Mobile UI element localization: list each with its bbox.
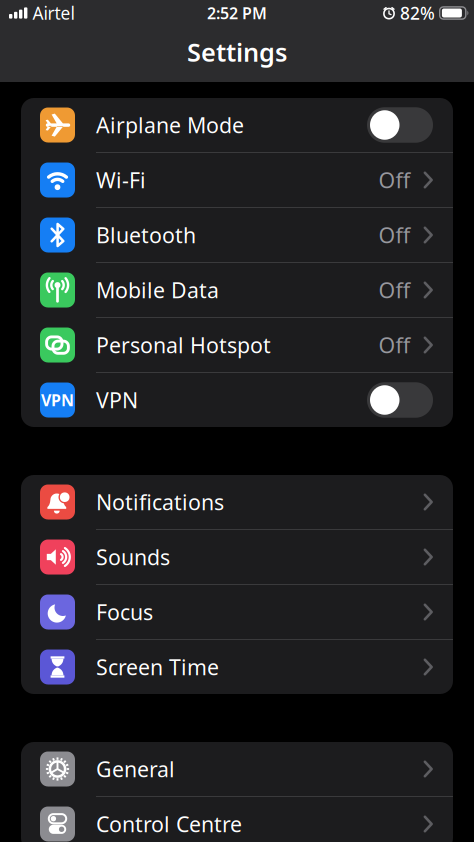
staticText: Off [378,221,410,249]
staticText: VPN [96,386,138,414]
button[interactable]: Control Centre [21,797,453,842]
button[interactable]: Wi-Fi [21,153,453,207]
staticText: Airtel [32,1,74,24]
staticText: Airplane Mode [96,111,244,139]
button[interactable]: VPN [367,382,433,418]
button[interactable]: Mobile Data [21,263,453,317]
staticText: Control Centre [96,810,242,838]
staticText: Bluetooth [96,221,196,249]
staticText: Off [378,276,410,304]
staticText: Off [378,331,410,359]
button[interactable]: Notifications [21,475,453,529]
staticText: Notifications [96,488,224,516]
button[interactable]: General [21,742,453,796]
staticText: VPN [41,389,74,411]
staticText: Screen Time [96,653,219,681]
staticText: Focus [96,598,153,626]
button[interactable]: Personal Hotspot [21,318,453,372]
staticText: Wi-Fi [96,166,146,194]
button[interactable]: Sounds [21,530,453,584]
staticText: Off [378,166,410,194]
staticText: Settings [187,35,287,69]
staticText: 82% [400,1,435,24]
button[interactable]: Airplane Mode [367,107,433,143]
button[interactable]: Bluetooth [21,208,453,262]
button[interactable]: Focus [21,585,453,639]
staticText: Mobile Data [96,276,219,304]
button[interactable]: Screen Time [21,640,453,694]
staticText: Sounds [96,543,170,571]
staticText: 2:52 PM [207,2,267,24]
staticText: Personal Hotspot [96,331,271,359]
staticText: General [96,755,175,783]
